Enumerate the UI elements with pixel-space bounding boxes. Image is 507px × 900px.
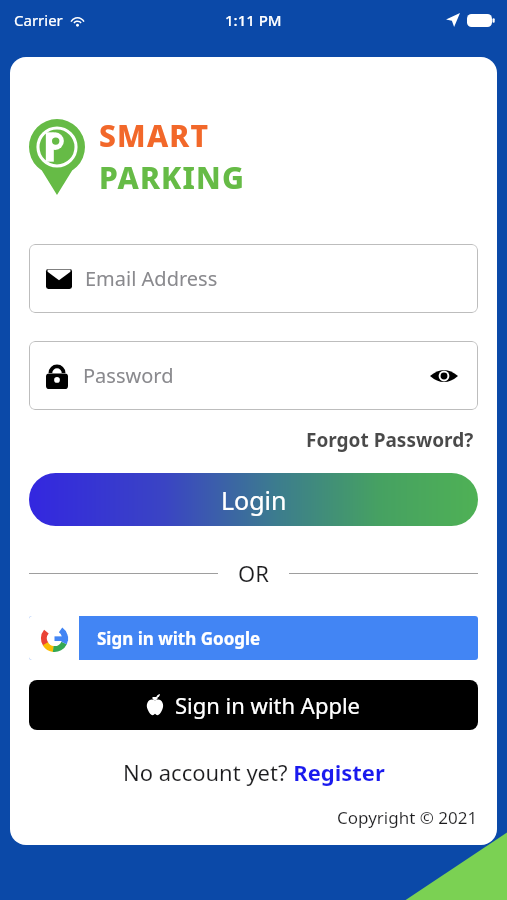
staticText: 1:11 PM xyxy=(225,10,282,30)
staticText: Password xyxy=(83,362,174,389)
button[interactable]: Show password xyxy=(427,359,461,393)
staticText: Sign in with Apple xyxy=(175,690,361,720)
staticText: PARKING xyxy=(99,157,246,198)
button[interactable]: Sign in with Google xyxy=(29,616,478,660)
button[interactable]: Email Address xyxy=(29,244,478,313)
button[interactable]: Forgot Password? xyxy=(302,423,478,457)
button[interactable]: Sign in with Apple xyxy=(29,680,478,730)
staticText: Forgot Password? xyxy=(306,427,474,453)
staticText: No account yet? Register xyxy=(123,757,385,787)
staticText: Login xyxy=(221,483,287,517)
staticText: OR xyxy=(238,558,269,588)
staticText: Sign in with Google xyxy=(97,627,261,650)
staticText: Carrier xyxy=(14,10,63,30)
button[interactable]: Login xyxy=(29,473,478,526)
button[interactable]: Password xyxy=(29,341,478,410)
staticText: Copyright © 2021 xyxy=(337,806,478,829)
staticText: SMART xyxy=(99,115,210,156)
staticText: Email Address xyxy=(85,265,218,292)
button[interactable]: No account yet? Register xyxy=(123,757,385,787)
